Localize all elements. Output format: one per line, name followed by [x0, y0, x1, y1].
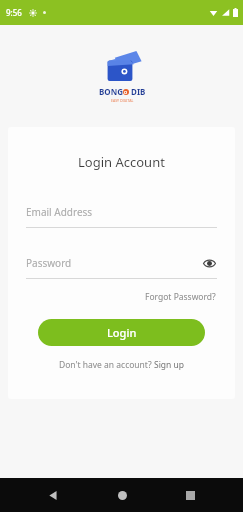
button[interactable]: Forgot Password?: [144, 289, 217, 305]
staticText: Sign up: [154, 359, 185, 371]
button[interactable]: Back: [38, 480, 68, 510]
staticText: O: [124, 90, 128, 95]
staticText: Password: [26, 256, 201, 270]
staticText: Forgot Password?: [145, 291, 216, 303]
staticText: Don't have an account?: [59, 359, 154, 371]
button[interactable]: Login: [38, 319, 205, 346]
staticText: Email Address: [26, 205, 93, 219]
staticText: Login: [107, 325, 137, 340]
button[interactable]: Password: [26, 255, 217, 279]
button[interactable]: Home: [107, 480, 137, 510]
button[interactable]: Don't have an account?: [59, 357, 185, 373]
staticText: DIB: [129, 86, 146, 97]
button[interactable]: Recent apps: [175, 480, 205, 510]
button[interactable]: Email Address: [26, 205, 217, 228]
staticText: 9:56: [6, 7, 22, 18]
button[interactable]: Show password: [201, 255, 217, 271]
staticText: BONG: [99, 86, 123, 97]
staticText: EASY DIGITAL: [111, 98, 134, 103]
staticText: Login Account: [78, 153, 165, 171]
